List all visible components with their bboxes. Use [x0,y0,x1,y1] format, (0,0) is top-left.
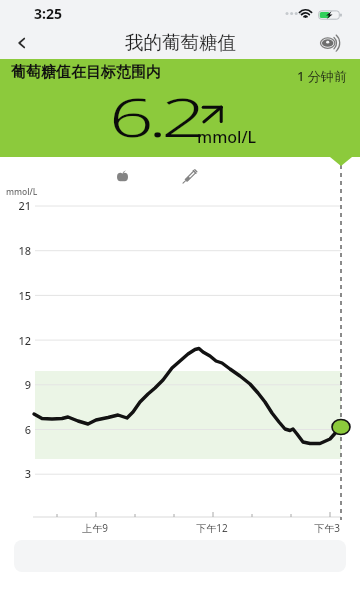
staticText: 9 [9,377,31,392]
staticText: 15 [9,288,31,303]
staticText: 6.2 [109,79,200,153]
staticText: 3:25 [34,4,62,23]
staticText: 下午12 [186,521,238,535]
staticText: mmol/L [6,186,38,198]
staticText: 上午9 [69,521,121,535]
staticText: 12 [9,333,31,348]
staticText: 18 [9,243,31,258]
button[interactable]: Back [0,26,44,59]
staticText: 21 [9,198,31,213]
staticText: 3 [9,466,31,481]
staticText: 葡萄糖值在目标范围内 [11,63,161,82]
button[interactable]: Scan sensor [308,26,354,59]
staticText: 下午3 [301,521,353,535]
staticText: mmol/L [197,126,257,148]
staticText: 6 [9,422,31,437]
staticText: 1 分钟前 [297,67,347,85]
staticText: 我的葡萄糖值 [125,31,236,54]
